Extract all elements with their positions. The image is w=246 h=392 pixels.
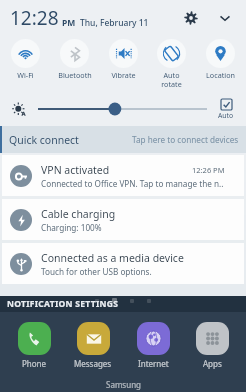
button[interactable]: Brightness	[9, 99, 29, 119]
button[interactable]: Apps	[186, 322, 238, 369]
staticText: Auto rotate	[161, 70, 182, 89]
staticText: Samsung	[106, 379, 141, 390]
staticText: Thu, February 11	[80, 17, 149, 29]
button[interactable]: Connected as a media device	[2, 243, 244, 284]
button[interactable]	[38, 92, 207, 126]
button[interactable]: Auto	[215, 99, 237, 120]
button[interactable]: Wi-Fi	[2, 36, 49, 92]
button[interactable]: Quick connect	[0, 126, 246, 153]
button[interactable]: Bluetooth	[51, 36, 98, 92]
staticText: Cable charging	[41, 207, 116, 221]
staticText: PM	[62, 17, 76, 29]
staticText: Auto	[218, 111, 234, 120]
staticText: Vibrate	[111, 70, 136, 80]
staticText: Internet	[138, 358, 169, 369]
staticText: 12:26 PM	[192, 165, 225, 175]
button[interactable]: NOTIFICATION SETTINGS	[0, 296, 246, 312]
staticText: 12:28	[10, 5, 59, 31]
button[interactable]: Auto rotate	[148, 36, 195, 92]
button[interactable]: Phone	[8, 322, 60, 369]
staticText: Touch for other USB options.	[41, 266, 152, 277]
button[interactable]: Messages	[67, 322, 119, 369]
button[interactable]: Expand	[212, 5, 238, 31]
staticText: Connected to Office VPN. Tap to manage t…	[41, 178, 224, 189]
staticText: Location	[206, 70, 235, 80]
staticText: Apps	[203, 358, 222, 369]
button[interactable]: Settings	[178, 5, 204, 31]
staticText: Connected as a media device	[41, 251, 184, 265]
staticText: Wi-Fi	[17, 70, 34, 80]
staticText: VPN activated	[41, 163, 110, 177]
button[interactable]: Internet	[127, 322, 179, 369]
staticText: NOTIFICATION SETTINGS	[7, 298, 119, 310]
staticText: Quick connect	[9, 133, 79, 147]
button[interactable]: Cable charging	[2, 199, 244, 240]
button[interactable]: VPN activated	[2, 155, 244, 196]
staticText: Charging: 100%	[41, 222, 102, 233]
staticText: Messages	[74, 358, 112, 369]
staticText: Phone	[22, 358, 47, 369]
staticText: Tap here to connect devices	[132, 134, 239, 145]
button[interactable]: Location	[197, 36, 244, 92]
button[interactable]: Vibrate	[100, 36, 147, 92]
staticText: Bluetooth	[58, 70, 92, 80]
